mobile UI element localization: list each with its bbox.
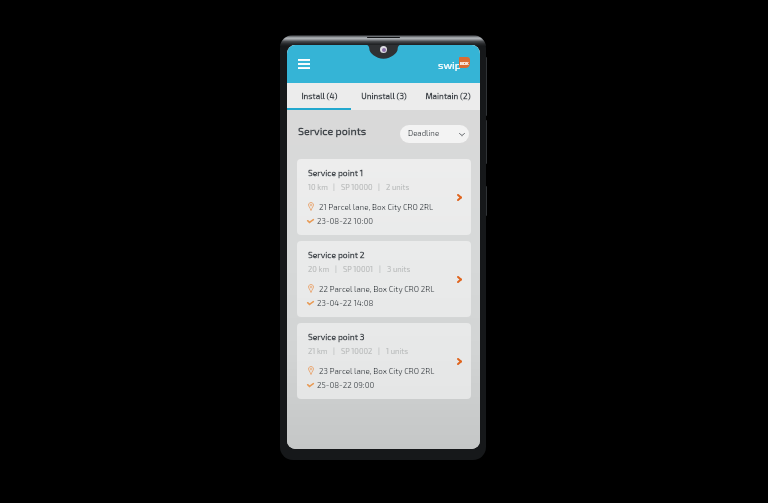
button[interactable]: Deadline <box>400 125 469 143</box>
staticText: 23 Parcel lane, Box City CRO 2RL <box>319 366 435 376</box>
staticText: 3 units <box>387 264 411 273</box>
staticText: Service point 2 <box>308 250 365 260</box>
staticText: Service points <box>298 124 367 137</box>
staticText: 2 units <box>386 182 410 191</box>
staticText: | <box>328 346 341 355</box>
button[interactable]: Install (4) <box>287 83 352 110</box>
button[interactable]: Maintain (2) <box>416 83 480 110</box>
staticText: Install (4) <box>301 91 338 101</box>
staticText: Service point 1 <box>308 168 364 178</box>
staticText: 21 Parcel lane, Box City CRO 2RL <box>319 202 434 212</box>
staticText: 10 km <box>308 182 328 191</box>
staticText: | <box>330 264 343 273</box>
button[interactable]: Uninstall (3) <box>352 83 416 110</box>
button[interactable]: Service point 3 <box>297 323 471 399</box>
button[interactable]: Open navigation menu <box>292 53 316 74</box>
staticText: | <box>373 346 386 355</box>
staticText: | <box>374 264 387 273</box>
staticText: 22 Parcel lane, Box City CRO 2RL <box>319 284 435 294</box>
staticText: Maintain (2) <box>425 91 471 101</box>
staticText: SP 10000 <box>341 182 373 191</box>
staticText: | <box>328 182 341 191</box>
staticText: Service point 3 <box>308 332 365 342</box>
staticText: 20 km <box>308 264 330 273</box>
button[interactable]: Service point 1 <box>297 159 471 235</box>
staticText: 1 units <box>386 346 409 355</box>
staticText: SP 10001 <box>343 264 374 273</box>
staticText: 25-08-22 09:00 <box>317 380 375 390</box>
staticText: 21 km <box>308 346 328 355</box>
staticText: | <box>373 182 386 191</box>
staticText: 23-04-22 14:08 <box>317 298 374 308</box>
staticText: BOX <box>460 60 469 66</box>
staticText: 23-08-22 10:00 <box>317 216 374 226</box>
staticText: Deadline <box>408 128 440 137</box>
staticText: Uninstall (3) <box>361 91 407 101</box>
staticText: SP 10002 <box>341 346 373 355</box>
button[interactable]: Service point 2 <box>297 241 471 317</box>
staticText: swip <box>438 58 461 71</box>
